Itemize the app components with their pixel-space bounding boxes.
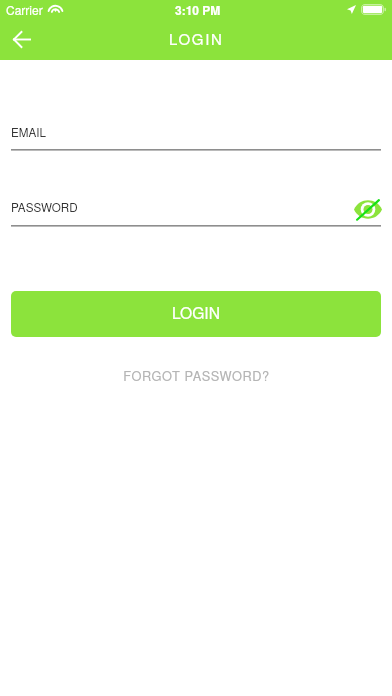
button[interactable]: EMAIL — [0, 118, 392, 151]
button[interactable]: Back — [0, 19, 44, 60]
button[interactable]: FORGOT PASSWORD? — [113, 362, 280, 388]
button[interactable]: LOGIN — [11, 291, 381, 337]
staticText: LOGIN — [172, 301, 220, 323]
staticText: PASSWORD — [11, 199, 78, 216]
staticText: Carrier — [6, 1, 43, 18]
staticText: 3:10 PM — [175, 1, 221, 18]
button[interactable]: PASSWORD — [0, 194, 392, 227]
staticText: EMAIL — [11, 124, 47, 141]
staticText: LOGIN — [169, 28, 224, 49]
button[interactable]: Show password — [350, 194, 386, 224]
